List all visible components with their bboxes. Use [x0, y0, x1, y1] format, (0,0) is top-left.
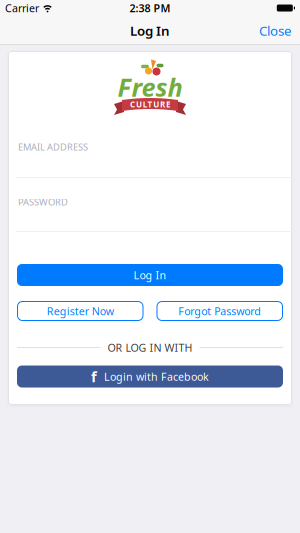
- staticText: OR LOG IN WITH: [107, 340, 192, 355]
- button[interactable]: Close: [259, 22, 292, 39]
- staticText: f: [91, 367, 97, 386]
- staticText: CULTURE: [130, 99, 170, 110]
- button[interactable]: f: [17, 365, 283, 387]
- staticText: Close: [259, 22, 292, 39]
- button[interactable]: Log In: [17, 264, 283, 286]
- staticText: Log In: [130, 22, 170, 39]
- staticText: EMAIL ADDRESS: [18, 141, 88, 153]
- button[interactable]: Register Now: [17, 301, 143, 321]
- staticText: Carrier: [5, 1, 39, 15]
- button[interactable]: Forgot Password: [156, 301, 283, 321]
- staticText: PASSWORD: [18, 196, 68, 208]
- staticText: 2:38 PM: [129, 1, 170, 15]
- staticText: Fresh: [117, 70, 182, 104]
- staticText: Register Now: [47, 304, 114, 318]
- staticText: Forgot Password: [178, 304, 261, 318]
- staticText: Login with Facebook: [104, 369, 209, 384]
- staticText: Log In: [133, 268, 166, 282]
